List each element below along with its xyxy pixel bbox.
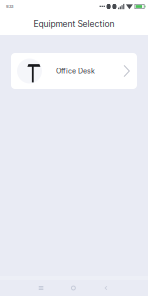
staticText: Office Desk (56, 67, 95, 75)
staticText: 9:33 (6, 4, 13, 9)
staticText: Equipment Selection (33, 19, 114, 29)
button[interactable]: Recent apps (25, 280, 57, 296)
button[interactable]: Office Desk (11, 53, 137, 89)
button[interactable]: Home (57, 280, 90, 296)
